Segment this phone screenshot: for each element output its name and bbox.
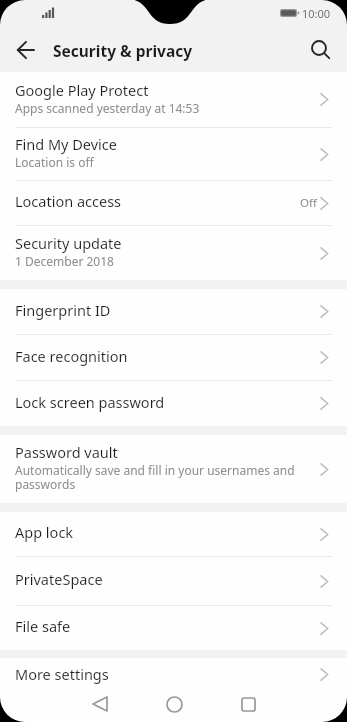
staticText: File safe	[15, 616, 71, 636]
staticText: More settings	[15, 664, 109, 684]
staticText: 10:00	[302, 6, 331, 21]
button[interactable]: PrivateSpace	[0, 557, 347, 605]
staticText: Lock screen password	[15, 392, 165, 412]
staticText: Security & privacy	[53, 40, 193, 61]
button[interactable]: More settings	[0, 658, 347, 690]
button[interactable]: Lock screen password	[0, 381, 347, 426]
button[interactable]: Fingerprint ID	[0, 289, 347, 334]
button[interactable]	[211, 690, 285, 722]
staticText: Automatically save and fill in your user…	[15, 462, 295, 493]
staticText: PrivateSpace	[15, 569, 103, 589]
button[interactable]	[8, 32, 44, 68]
button[interactable]: Find My Device	[0, 128, 347, 180]
staticText: Location access	[15, 191, 122, 211]
staticText: Face recognition	[15, 346, 128, 366]
staticText: Fingerprint ID	[15, 300, 111, 320]
staticText: Security update	[15, 233, 122, 253]
staticText: Password vault	[15, 442, 118, 462]
staticText: App lock	[15, 522, 74, 542]
button[interactable]: App lock	[0, 512, 347, 556]
button[interactable]: Security update	[0, 226, 347, 280]
button[interactable]: Face recognition	[0, 335, 347, 380]
button[interactable]	[304, 33, 338, 67]
staticText: 1 December 2018	[15, 253, 114, 269]
staticText: Google Play Protect	[15, 80, 149, 100]
button[interactable]: Password vault	[0, 435, 347, 503]
staticText: Find My Device	[15, 134, 117, 154]
staticText: Off	[300, 195, 317, 211]
button[interactable]: Google Play Protect	[0, 72, 347, 127]
button[interactable]: File safe	[0, 606, 347, 650]
staticText: Location is off	[15, 154, 94, 170]
button[interactable]	[63, 690, 137, 722]
button[interactable]: Location access	[0, 181, 347, 225]
staticText: Apps scanned yesterday at 14:53	[15, 100, 200, 116]
button[interactable]	[137, 690, 211, 722]
